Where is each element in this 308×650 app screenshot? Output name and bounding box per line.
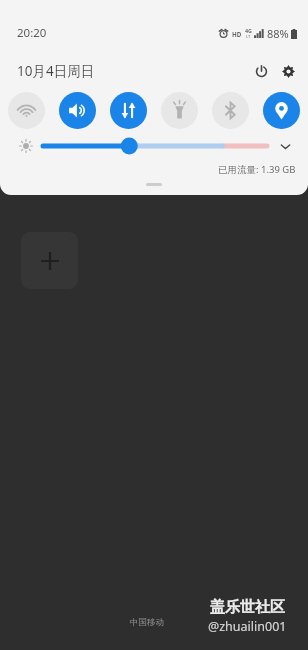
staticText: LT (246, 34, 251, 40)
button[interactable]: Flashlight (161, 92, 198, 129)
button[interactable]: Brightness (43, 135, 267, 157)
staticText: @zhuailin001 (208, 618, 287, 635)
button[interactable]: Wi-Fi (8, 92, 45, 129)
button[interactable]: Add widget (21, 232, 78, 289)
button[interactable]: Settings (277, 60, 299, 82)
button[interactable]: Bluetooth (212, 92, 249, 129)
button[interactable]: Location (263, 92, 300, 129)
staticText: 88% (267, 26, 289, 41)
button[interactable]: Auto brightness (14, 134, 38, 158)
staticText: 20:20 (17, 25, 47, 41)
button[interactable]: Mobile data (110, 92, 147, 129)
staticText: 4G (245, 27, 252, 34)
button[interactable]: Sound (59, 92, 96, 129)
staticText: HD (232, 30, 242, 38)
staticText: 10月4日周日 (17, 62, 95, 80)
staticText: 已用流量: 1.39 GB (218, 163, 296, 176)
button[interactable]: Expand (274, 135, 296, 157)
staticText: 盖乐世社区 (210, 598, 285, 617)
staticText: 中国移动 (130, 617, 164, 628)
button[interactable]: Power (250, 60, 272, 82)
